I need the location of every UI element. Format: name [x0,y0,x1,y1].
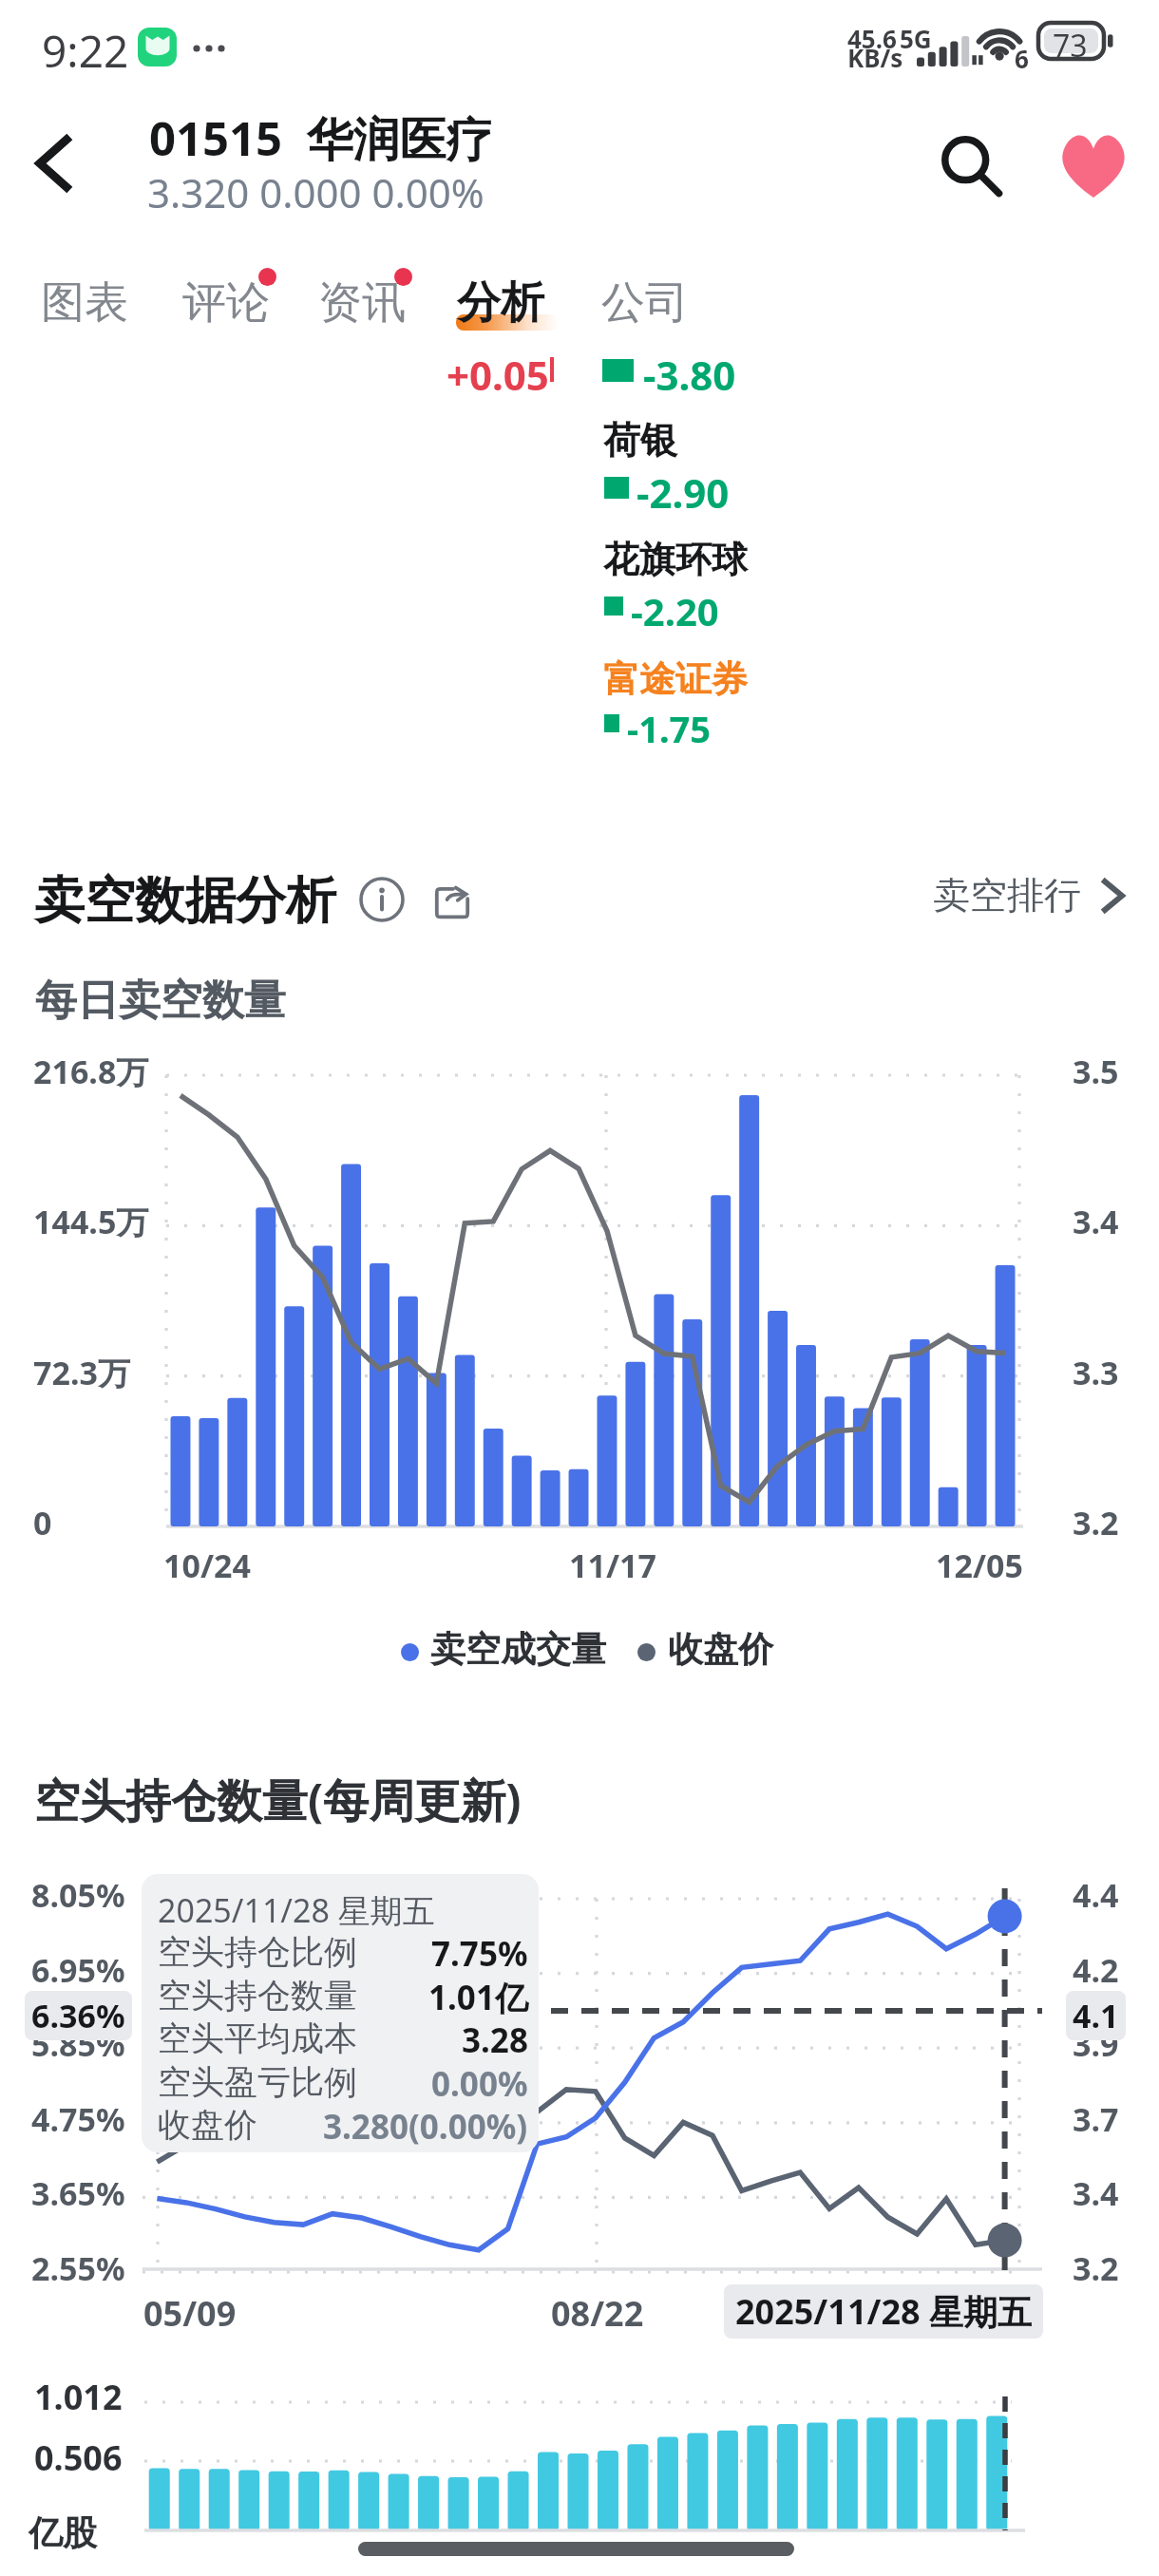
staticText: -2.90 [636,465,730,520]
staticText: 卖空排行 [933,872,1081,919]
staticText: 08/22 [551,2290,644,2337]
staticText: 0.506 [34,2434,123,2481]
button[interactable]: 图表 [41,275,143,344]
staticText: 216.8万 [33,1050,149,1093]
button[interactable]: 卖空排行 [918,857,1139,934]
staticText: 72.3万 [33,1351,130,1394]
button[interactable]: 分析 [457,275,560,344]
staticText: 卖空成交量 [430,1627,606,1672]
staticText: +0.05 [446,348,549,402]
button[interactable]: 资讯 [318,275,421,344]
button[interactable]: Share [427,873,480,926]
staticText: 公司 [601,275,689,331]
staticText: 3.280(0.00%) [323,2104,528,2150]
staticText: -2.20 [631,585,719,636]
staticText: 6.36% [31,1994,125,2037]
staticText: 10/24 [163,1544,251,1587]
staticText: 3.7 [1073,2097,1119,2141]
staticText: 评论 [182,275,270,331]
staticText: 6.95% [31,1948,125,1992]
staticText: 4.4 [1073,1873,1119,1917]
staticText: 0.00% [431,2061,528,2107]
staticText: 73 [1053,25,1088,66]
staticText: 7.75% [431,1931,528,1977]
staticText: 1.01亿 [428,1975,528,2020]
staticText: 富途证券 [603,656,748,702]
staticText: 每日卖空数量 [35,975,286,1027]
staticText: 3.2 [1073,2246,1119,2290]
staticText: 11/17 [569,1544,656,1587]
staticText: 图表 [41,275,128,331]
staticText: 空头平均成本 [158,2017,357,2059]
staticText: 5.85% [31,2022,125,2066]
staticText: 6 [1015,42,1029,75]
staticText: KB/s [847,41,903,74]
button[interactable]: Favorite [1035,108,1151,224]
button[interactable]: 评论 [182,275,285,344]
staticText: 空头持仓数量 [158,1975,357,2017]
staticText: 收盘价 [668,1627,773,1672]
staticText: 4.75% [31,2097,125,2141]
staticText: 2025/11/28 星期五 [158,1888,435,1932]
staticText: 3.4 [1073,1200,1119,1243]
button[interactable]: Search [914,108,1030,224]
staticText: 45.6 [847,22,897,55]
staticText: 3.28 [462,2017,528,2063]
staticText: 8.05% [31,1873,125,1917]
staticText: 01515 华润医疗 [149,106,493,170]
staticText: 4.1 [1073,1994,1119,2037]
button[interactable]: Back [0,104,105,222]
staticText: 05/09 [143,2290,237,2337]
staticText: 分析 [457,275,544,331]
staticText: 3.4 [1073,2171,1119,2215]
staticText: 3.2 [1073,1501,1119,1544]
staticText: 3.9 [1073,2022,1119,2066]
staticText: 0 [33,1501,52,1544]
staticText: 3.5 [1073,1050,1119,1093]
staticText: 4.2 [1073,1948,1119,1992]
staticText: -3.80 [643,348,736,402]
staticText: 5G [900,22,932,55]
staticText: 空头持仓比例 [158,1931,357,1973]
staticText: 空头盈亏比例 [158,2061,357,2103]
staticText: 2.55% [31,2246,125,2290]
button[interactable]: Info [355,873,408,926]
staticText: 花旗环球 [603,537,748,582]
staticText: 1.012 [34,2374,123,2420]
staticText: 卖空数据分析 [34,869,336,933]
staticText: 2025/11/28 星期五 [735,2288,1032,2335]
staticText: 荷银 [603,417,677,464]
staticText: -1.75 [627,704,712,753]
staticText: 空头持仓数量(每周更新) [34,1769,522,1831]
button[interactable]: 公司 [601,275,704,344]
staticText: 收盘价 [158,2104,257,2146]
staticText: 资讯 [318,275,406,331]
staticText: 亿股 [28,2511,97,2554]
staticText: 9:22 [42,21,129,81]
staticText: 3.65% [31,2171,125,2215]
staticText: 144.5万 [33,1200,149,1243]
staticText: 3.3 [1073,1351,1119,1394]
staticText: 12/05 [936,1544,1023,1587]
staticText: 3.320 0.000 0.00% [147,165,484,219]
